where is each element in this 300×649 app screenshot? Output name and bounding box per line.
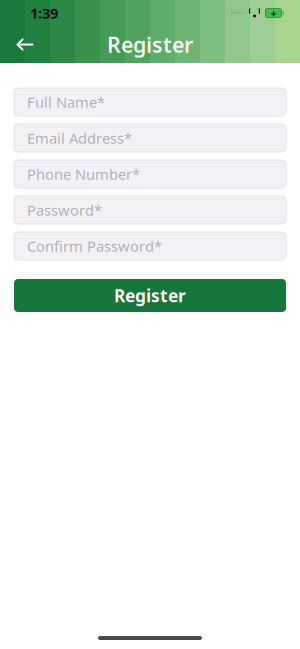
staticText: 1:39: [30, 3, 58, 23]
staticText: Register: [114, 284, 186, 307]
staticText: Full Name*: [27, 92, 105, 112]
button[interactable]: Email Address*: [14, 124, 286, 152]
staticText: +: [270, 6, 276, 20]
staticText: Password*: [27, 200, 102, 220]
staticText: Register: [107, 30, 193, 59]
button[interactable]: Register: [14, 279, 286, 312]
button[interactable]: Password*: [14, 196, 286, 224]
staticText: Confirm Password*: [27, 236, 162, 256]
staticText: Phone Number*: [27, 164, 140, 184]
staticText: Email Address*: [27, 128, 132, 148]
button[interactable]: Phone Number*: [14, 160, 286, 188]
button[interactable]: Confirm Password*: [14, 232, 286, 260]
button[interactable]: Full Name*: [14, 88, 286, 116]
button[interactable]: Back: [6, 27, 44, 61]
